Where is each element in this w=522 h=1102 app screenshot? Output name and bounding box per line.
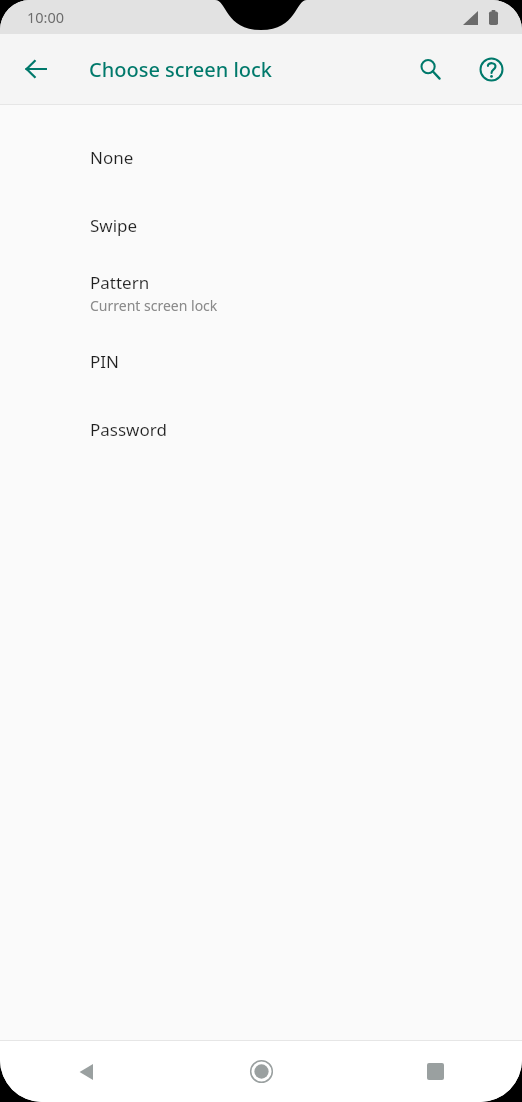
button[interactable]: Password [0, 395, 522, 463]
button[interactable]: Help [467, 45, 515, 93]
button[interactable]: Swipe [0, 191, 522, 259]
staticText: Pattern [90, 271, 150, 294]
button[interactable]: None [0, 123, 522, 191]
button[interactable]: Back [12, 45, 60, 93]
staticText: Swipe [90, 214, 138, 237]
button[interactable]: Search [406, 45, 454, 93]
button[interactable]: Back [0, 1041, 174, 1102]
staticText: Choose screen lock [89, 56, 272, 83]
staticText: Password [90, 418, 167, 441]
staticText: PIN [90, 350, 119, 373]
button[interactable]: Home [174, 1041, 348, 1102]
staticText: None [90, 146, 134, 169]
button[interactable]: Pattern [0, 259, 522, 327]
button[interactable]: PIN [0, 327, 522, 395]
staticText: 10:00 [27, 7, 65, 27]
staticText: Current screen lock [90, 296, 218, 315]
button[interactable]: Recent apps [348, 1041, 522, 1102]
